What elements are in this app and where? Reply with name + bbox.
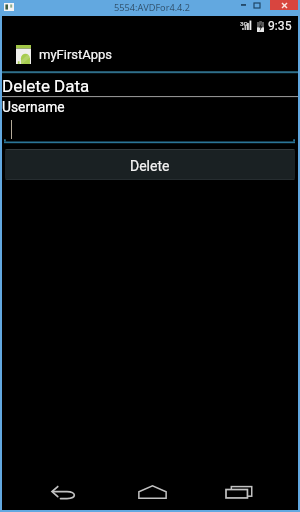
staticText: 5554:AVDFor4.4.2: [114, 1, 190, 14]
button[interactable]: Delete: [5, 149, 295, 180]
button[interactable]: Close: [270, 0, 298, 10]
button[interactable]: Back: [38, 472, 88, 512]
button[interactable]: Maximize: [254, 3, 260, 8]
button[interactable]: Recent apps: [214, 472, 264, 512]
staticText: Username: [2, 99, 65, 115]
button[interactable]: [2, 116, 294, 143]
staticText: myFirstApps: [39, 47, 113, 62]
staticText: Delete: [130, 158, 170, 174]
staticText: 9:35: [268, 19, 292, 33]
button[interactable]: Home: [127, 472, 177, 512]
staticText: Delete Data: [2, 76, 90, 96]
button[interactable]: Minimize: [233, 0, 254, 10]
staticText: 3G: [240, 20, 248, 27]
